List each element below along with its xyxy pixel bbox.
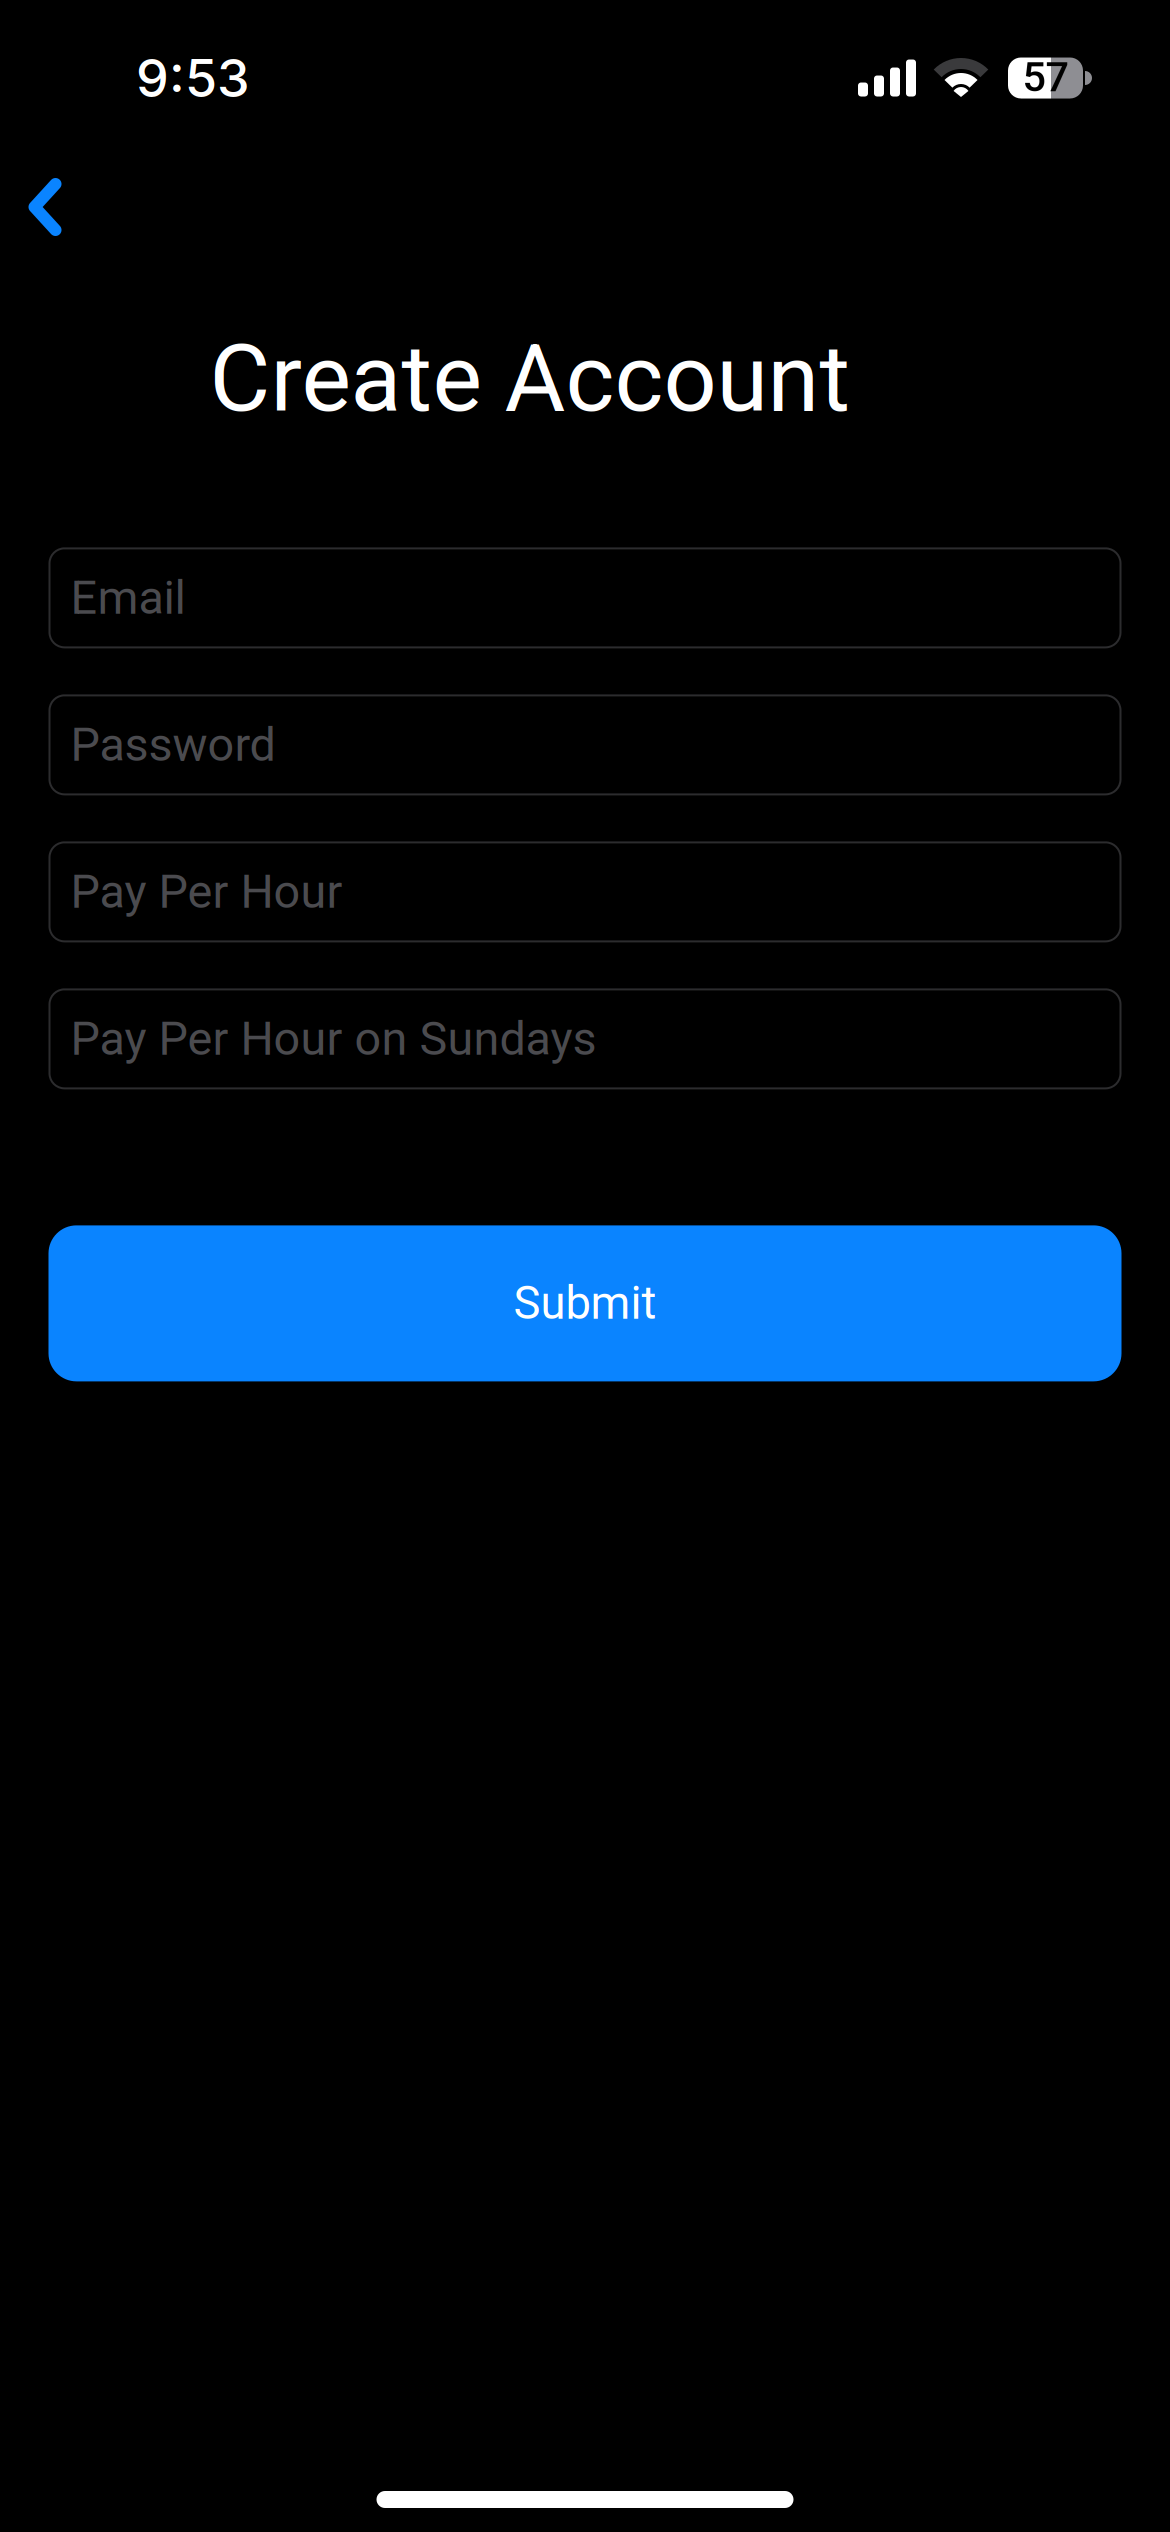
staticText: Password [70, 717, 275, 772]
button[interactable]: Password [48, 694, 1121, 795]
button[interactable]: Pay Per Hour on Sundays [48, 988, 1121, 1089]
button[interactable]: Back [0, 151, 90, 263]
staticText: Create Account [209, 324, 850, 433]
staticText: Pay Per Hour [70, 864, 342, 919]
staticText: Pay Per Hour on Sundays [70, 1011, 596, 1066]
button[interactable]: Email [48, 547, 1121, 648]
button[interactable]: Pay Per Hour [48, 841, 1121, 942]
staticText: Email [70, 570, 185, 625]
staticText: Submit [513, 1277, 656, 1330]
button[interactable]: Submit [48, 1225, 1121, 1381]
staticText: 9:53 [136, 46, 250, 109]
staticText: 57 [1022, 53, 1068, 101]
